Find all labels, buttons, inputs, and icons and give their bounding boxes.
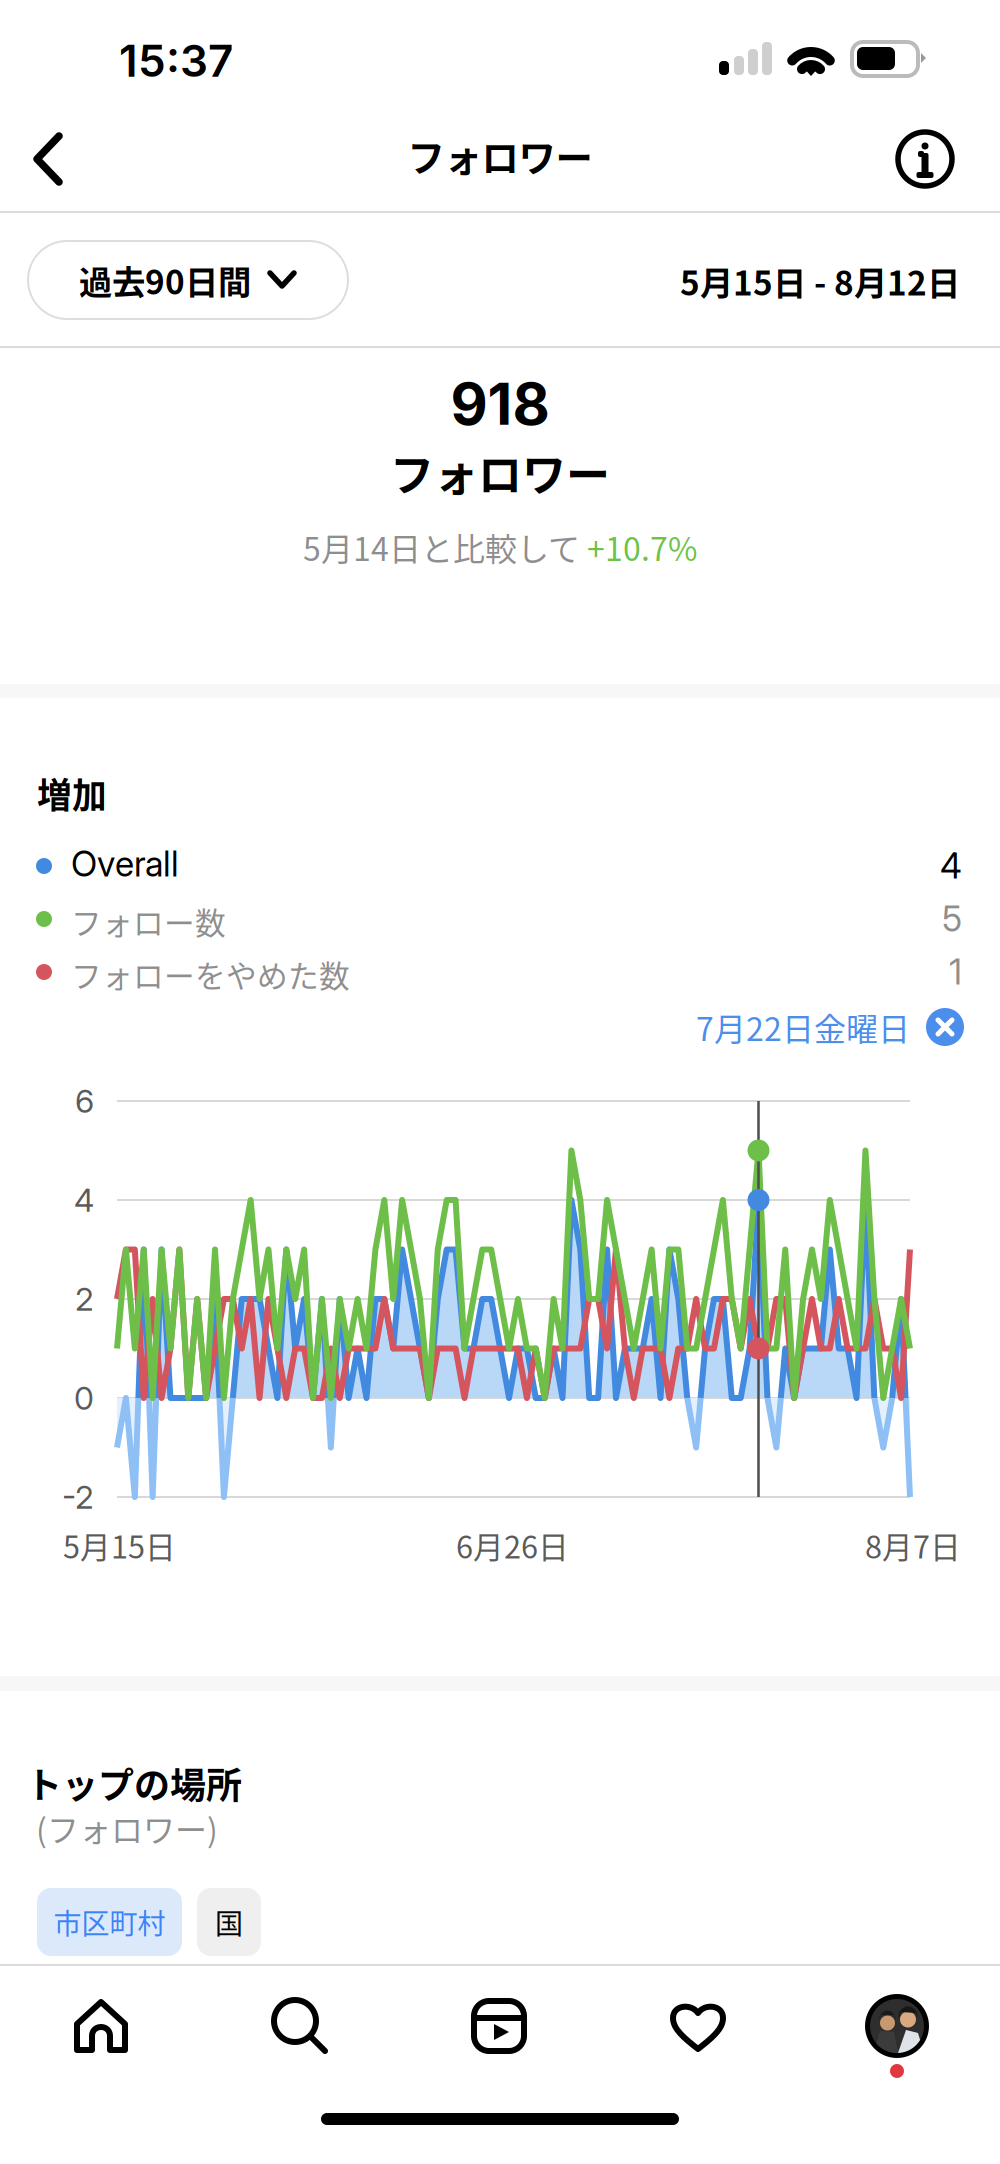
staticText: +10.7% <box>587 524 697 570</box>
staticText: 0 <box>74 1379 94 1417</box>
staticText: 6月26日 <box>456 1523 569 1567</box>
staticText: 4 <box>940 845 962 887</box>
staticText: 市区町村 <box>53 1902 165 1942</box>
staticText: 918 <box>450 369 549 439</box>
staticText: 国 <box>215 1902 243 1942</box>
staticText: 1 <box>949 951 962 993</box>
staticText: Overall <box>71 843 179 885</box>
staticText: フォローをやめた数 <box>71 952 350 996</box>
staticText: 5月14日と比較して <box>303 524 587 570</box>
staticText: フォロワー <box>390 440 610 504</box>
staticText: 5月15日 - 8月12日 <box>680 257 960 305</box>
button[interactable]: Reels <box>409 1971 589 2081</box>
button[interactable]: Activity <box>608 1971 788 2081</box>
button[interactable]: Search <box>210 1971 390 2081</box>
staticText: トップの場所 <box>26 1757 242 1809</box>
staticText: 5 <box>942 898 962 940</box>
staticText: 4 <box>74 1181 94 1219</box>
staticText: -2 <box>62 1478 94 1516</box>
staticText: 15:37 <box>119 34 233 87</box>
staticText: 6 <box>75 1082 94 1120</box>
staticText: (フォロワー) <box>36 1805 218 1851</box>
button[interactable]: 国 <box>197 1888 261 1956</box>
staticText: 2 <box>75 1280 94 1318</box>
button[interactable]: Back <box>2 113 94 205</box>
button[interactable]: 7月22日金曜日 <box>696 1003 964 1051</box>
staticText: 増加 <box>37 768 107 818</box>
button[interactable]: Profile <box>807 1971 987 2081</box>
button[interactable]: 過去90日間 <box>28 241 348 319</box>
staticText: フォロー数 <box>71 899 226 943</box>
staticText: フォロワー <box>407 129 592 183</box>
button[interactable]: Information <box>879 113 971 205</box>
staticText: 7月22日金曜日 <box>696 1004 910 1050</box>
staticText: 過去90日間 <box>79 256 251 304</box>
button[interactable]: Home <box>11 1971 191 2081</box>
button[interactable]: 市区町村 <box>37 1888 182 1956</box>
staticText: 5月15日 <box>63 1523 176 1567</box>
staticText: 8月7日 <box>865 1523 961 1567</box>
